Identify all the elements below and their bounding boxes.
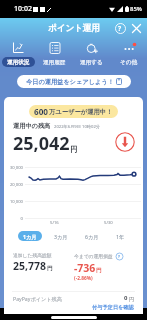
staticText: 円 [47, 265, 53, 272]
button[interactable]: 運用状況 [0, 38, 36, 67]
staticText: その他 [120, 59, 138, 66]
button[interactable]: 1年 [111, 231, 130, 241]
button[interactable]: Help [112, 20, 128, 36]
staticText: 今までの運用損益 [74, 253, 113, 259]
staticText: 25,778 [13, 259, 47, 273]
staticText: 0 [124, 294, 128, 302]
staticText: 万ユーザーが運用中！ [49, 108, 113, 116]
staticText: 1年 [116, 233, 125, 240]
staticText: 600 [34, 106, 49, 117]
staticText: (-2.86%) [74, 275, 93, 282]
staticText: 運用履歴 [43, 59, 66, 66]
button[interactable]: 600 [29, 105, 118, 118]
staticText: ? [118, 24, 122, 33]
staticText: 2022年6月9日 10時02分 [54, 124, 100, 130]
staticText: 円 [129, 296, 134, 302]
staticText: ? [118, 254, 120, 259]
button[interactable]: 運用する [73, 38, 110, 67]
staticText: 今日の運用益をシェアしよう！ [26, 78, 114, 86]
button[interactable]: Info [115, 252, 123, 260]
button[interactable]: Withdraw points [114, 131, 135, 152]
staticText: ポイント運用 [48, 23, 100, 34]
staticText: PayPayポイント残高 [13, 295, 62, 302]
button[interactable]: 運用履歴 [36, 38, 73, 67]
staticText: 円 [96, 267, 102, 274]
staticText: 10:02 [14, 4, 32, 14]
staticText: 85% [130, 5, 142, 13]
staticText: 3カ月 [54, 233, 68, 240]
button[interactable]: 付与予定日を確認 [92, 304, 134, 311]
staticText: 円 [70, 145, 78, 154]
staticText: 30,000 [4, 165, 23, 171]
staticText: 25,042 [13, 131, 70, 156]
staticText: 運用する [80, 59, 103, 66]
button[interactable]: Close [128, 20, 144, 36]
staticText: 20,000 [4, 182, 23, 188]
button[interactable]: その他 [110, 38, 147, 67]
button[interactable]: 6カ月 [80, 231, 104, 241]
staticText: -736 [74, 261, 96, 275]
button[interactable]: 1カ月 [18, 231, 42, 241]
staticText: 6カ月 [85, 233, 99, 240]
staticText: 運用中の残高 [13, 122, 51, 130]
staticText: 運用状況 [7, 59, 30, 66]
staticText: 5/16 [50, 220, 59, 226]
staticText: 5/30 [104, 220, 113, 226]
staticText: 追加した残高総額 [13, 252, 52, 258]
button[interactable]: 今日の運用益をシェアしよう！ [17, 75, 131, 88]
staticText: 0 [4, 216, 23, 222]
button[interactable]: 3カ月 [49, 231, 73, 241]
staticText: 1カ月 [23, 233, 37, 240]
staticText: 付与予定日を確認 [92, 304, 134, 311]
staticText: 10,000 [4, 199, 23, 205]
